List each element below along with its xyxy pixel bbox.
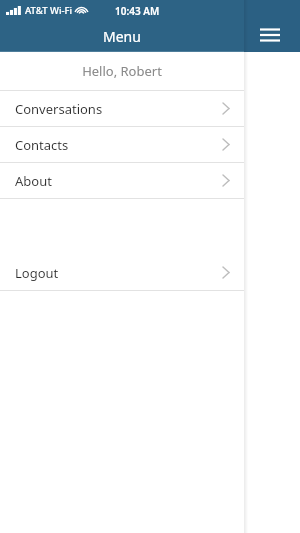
staticText: AT&T Wi-Fi <box>25 4 73 17</box>
staticText: Logout <box>15 264 59 282</box>
staticText: Hello, Robert <box>82 62 162 80</box>
staticText: 10:43 AM <box>115 4 160 18</box>
staticText: Conversations <box>15 100 103 118</box>
staticText: Menu <box>103 27 141 46</box>
staticText: Contacts <box>15 136 69 154</box>
button[interactable]: About <box>0 163 244 198</box>
button[interactable]: Open navigation menu <box>252 20 288 50</box>
button[interactable]: Conversations <box>0 91 244 126</box>
staticText: About <box>15 172 52 190</box>
button[interactable]: Contacts <box>0 127 244 162</box>
button[interactable]: Logout <box>0 255 244 290</box>
